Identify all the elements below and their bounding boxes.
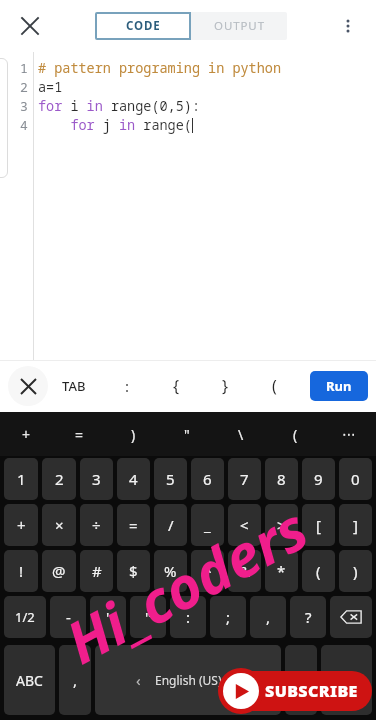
- staticText: ›: [236, 670, 241, 690]
- button[interactable]: TAB: [58, 368, 90, 404]
- button[interactable]: =: [117, 504, 150, 546]
- button[interactable]: OUTPUT: [191, 12, 287, 40]
- button[interactable]: Space, English (US): [95, 645, 281, 715]
- button[interactable]: ]: [339, 504, 372, 546]
- button[interactable]: More options: [328, 6, 368, 46]
- button[interactable]: ,: [250, 596, 286, 638]
- button[interactable]: _: [191, 504, 224, 546]
- button[interactable]: ): [339, 550, 372, 592]
- staticText: 4: [129, 469, 138, 489]
- button[interactable]: ": [130, 596, 166, 638]
- staticText: English (US): [155, 672, 222, 688]
- button[interactable]: ,: [59, 645, 91, 715]
- button[interactable]: >: [265, 504, 298, 546]
- button[interactable]: +: [4, 504, 38, 546]
- button[interactable]: 8: [265, 458, 298, 500]
- button[interactable]: \: [214, 412, 268, 456]
- button[interactable]: (: [261, 368, 287, 404]
- staticText: # pattern programing in python: [38, 59, 281, 77]
- staticText: 2: [55, 469, 64, 489]
- button[interactable]: [: [302, 504, 335, 546]
- button[interactable]: Backspace: [330, 596, 372, 638]
- button[interactable]: ^: [191, 550, 224, 592]
- button[interactable]: ?: [290, 596, 326, 638]
- staticText: ‹: [136, 670, 141, 690]
- button[interactable]: 4: [117, 458, 150, 500]
- staticText: -: [66, 607, 71, 627]
- button[interactable]: Subscribe: [232, 670, 372, 712]
- button[interactable]: ABC: [4, 645, 55, 715]
- button[interactable]: 1/2: [4, 596, 46, 638]
- button[interactable]: 9: [302, 458, 335, 500]
- button[interactable]: (: [268, 412, 322, 456]
- staticText: _: [204, 515, 211, 535]
- button[interactable]: 5: [154, 458, 187, 500]
- button[interactable]: $: [117, 550, 150, 592]
- staticText: a=1: [38, 78, 63, 96]
- staticText: ⋯: [342, 426, 356, 442]
- staticText: TAB: [62, 377, 86, 395]
- button[interactable]: :: [170, 596, 206, 638]
- staticText: 9: [314, 469, 323, 489]
- staticText: CODE: [126, 18, 161, 34]
- button[interactable]: }: [212, 368, 238, 404]
- button[interactable]: =: [53, 412, 106, 456]
- button[interactable]: 1: [4, 458, 38, 500]
- button[interactable]: @: [42, 550, 76, 592]
- staticText: {: [173, 375, 180, 397]
- button[interactable]: <: [228, 504, 261, 546]
- staticText: 6: [203, 469, 212, 489]
- staticText: (: [316, 561, 321, 581]
- staticText: !: [19, 561, 24, 581]
- button[interactable]: Close: [10, 6, 50, 46]
- button[interactable]: #: [80, 550, 113, 592]
- staticText: ABC: [16, 671, 43, 690]
- button[interactable]: ": [160, 412, 214, 456]
- staticText: ;: [226, 607, 231, 627]
- button[interactable]: ': [90, 596, 126, 638]
- staticText: }: [222, 375, 229, 397]
- button[interactable]: Run: [310, 371, 368, 401]
- staticText: 1/2: [15, 608, 35, 626]
- button[interactable]: 2: [42, 458, 76, 500]
- staticText: *: [277, 561, 286, 581]
- button[interactable]: *: [265, 550, 298, 592]
- staticText: ×: [55, 515, 64, 535]
- button[interactable]: .: [285, 645, 317, 715]
- button[interactable]: ;: [210, 596, 246, 638]
- button[interactable]: 3: [80, 458, 113, 500]
- button[interactable]: {: [163, 368, 189, 404]
- staticText: 4: [20, 116, 28, 134]
- staticText: ": [145, 607, 152, 627]
- staticText: (: [272, 375, 277, 397]
- button[interactable]: 0: [339, 458, 372, 500]
- button[interactable]: CODE: [95, 12, 191, 40]
- staticText: 3: [92, 469, 101, 489]
- button[interactable]: 7: [228, 458, 261, 500]
- staticText: Run: [326, 377, 352, 395]
- staticText: +: [17, 515, 26, 535]
- button[interactable]: ): [106, 412, 160, 456]
- button[interactable]: ⋯: [322, 412, 376, 456]
- button[interactable]: 6: [191, 458, 224, 500]
- button[interactable]: +: [0, 412, 53, 456]
- button[interactable]: /: [154, 504, 187, 546]
- button[interactable]: ÷: [80, 504, 113, 546]
- button[interactable]: !: [4, 550, 38, 592]
- staticText: 2: [20, 78, 28, 96]
- staticText: :: [186, 607, 191, 627]
- button[interactable]: %: [154, 550, 187, 592]
- button[interactable]: Hide keyboard: [8, 366, 48, 406]
- staticText: ^: [203, 561, 212, 581]
- button[interactable]: ×: [42, 504, 76, 546]
- button[interactable]: Enter: [321, 645, 372, 715]
- staticText: <: [240, 515, 249, 535]
- button[interactable]: &: [228, 550, 261, 592]
- button[interactable]: Open file drawer: [0, 58, 8, 178]
- button[interactable]: :: [114, 368, 140, 404]
- button[interactable]: -: [50, 596, 86, 638]
- staticText: ]: [353, 515, 358, 535]
- staticText: SUBSCRIBE: [265, 680, 358, 702]
- button[interactable]: (: [302, 550, 335, 592]
- staticText: %: [164, 561, 177, 581]
